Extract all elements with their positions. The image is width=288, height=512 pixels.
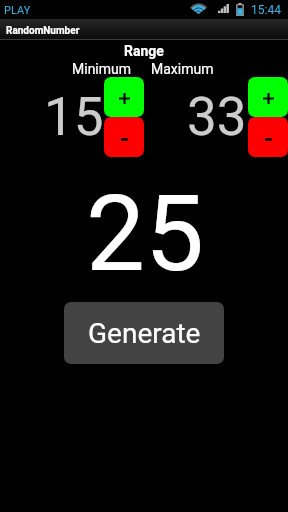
staticText: 15:44 xyxy=(251,3,281,17)
staticText: 15 xyxy=(44,86,104,148)
button[interactable]: Increase xyxy=(248,77,288,117)
button[interactable]: Increase xyxy=(104,77,144,117)
other: Signal xyxy=(218,4,229,13)
staticText: Range xyxy=(0,43,288,59)
button[interactable]: Decrease xyxy=(248,117,288,157)
staticText: 33 xyxy=(187,86,247,148)
other: Wifi xyxy=(191,3,206,14)
staticText: Maximum xyxy=(151,61,214,77)
staticText: RandomNumber xyxy=(6,25,80,37)
staticText: 25 xyxy=(86,173,205,296)
staticText: Generate xyxy=(88,317,201,350)
other: Battery xyxy=(236,3,244,16)
staticText: PLAY xyxy=(4,4,31,17)
button[interactable]: Decrease xyxy=(104,117,144,157)
staticText: Minimum xyxy=(72,61,132,77)
button[interactable]: Generate xyxy=(64,302,224,364)
